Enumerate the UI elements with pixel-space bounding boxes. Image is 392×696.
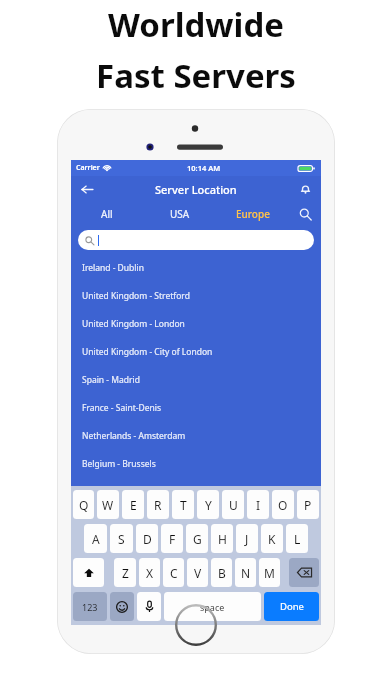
button[interactable]: Europe [216,202,289,226]
staticText: All [101,207,113,221]
staticText: Y [205,497,212,513]
staticText: 123 [82,601,98,613]
button[interactable]: Z [114,558,136,587]
button[interactable]: L [286,524,308,553]
staticText: Carrier [76,163,100,173]
button[interactable] [78,230,314,250]
button[interactable]: United Kingdom - City of London [71,338,321,366]
button[interactable]: K [261,524,283,553]
button[interactable]: Y [197,490,219,519]
button[interactable]: G [186,524,208,553]
button[interactable]: D [136,524,158,553]
staticText: 10:14 AM [187,163,221,173]
button[interactable]: J [236,524,258,553]
staticText: Server Location [155,182,237,197]
staticText: T [180,497,187,513]
staticText: F [169,531,176,547]
staticText: E [130,497,137,513]
button[interactable]: I [247,490,269,519]
staticText: United Kingdom - Stretford [82,290,190,302]
staticText: O [278,497,288,513]
staticText: United Kingdom - London [82,318,185,330]
staticText: USA [170,207,190,221]
button[interactable]: All [71,202,143,226]
button[interactable]: M [259,558,280,587]
staticText: France - Saint-Denis [82,402,162,414]
staticText: A [92,531,100,547]
button[interactable]: U [222,490,244,519]
button[interactable]: 123 [73,592,107,621]
button[interactable]: Done [264,592,319,621]
button[interactable]: United Kingdom - London [71,310,321,338]
staticText: Z [122,565,129,581]
button[interactable]: W [97,490,119,519]
button[interactable]: France - Saint-Denis [71,394,321,422]
staticText: Belgium - Brussels [82,458,156,470]
staticText: S [118,531,125,547]
staticText: Spain - Madrid [82,374,140,386]
staticText: P [304,497,312,513]
button[interactable]: T [172,490,194,519]
button[interactable]: E [122,490,144,519]
button[interactable]: B [211,558,232,587]
button[interactable]: Spain - Madrid [71,366,321,394]
button[interactable]: Notifications [294,178,316,200]
staticText: H [218,531,227,547]
button[interactable]: N [235,558,256,587]
staticText: J [245,531,249,547]
staticText: V [194,565,202,581]
button[interactable]: P [297,490,319,519]
staticText: K [268,531,276,547]
staticText: G [193,531,202,547]
button[interactable]: Q [73,490,94,519]
staticText: United Kingdom - City of London [82,346,213,358]
button[interactable]: United Kingdom - Stretford [71,282,321,310]
button[interactable]: Back [75,177,99,201]
button[interactable]: Voice input [137,592,161,621]
button[interactable]: A [84,524,107,553]
button[interactable]: Backspace [289,558,319,587]
staticText: C [170,565,178,581]
button[interactable]: space [164,592,261,621]
button[interactable]: Netherlands - Amsterdam [71,422,321,450]
staticText: Netherlands - Amsterdam [82,430,186,442]
staticText: I [256,497,261,513]
button[interactable]: Emoji [110,592,134,621]
button[interactable]: Shift [73,558,104,587]
staticText: Q [79,497,89,513]
staticText: Fast Servers [96,53,296,98]
staticText: R [154,497,162,513]
staticText: Worldwide [108,2,284,47]
button[interactable]: H [211,524,233,553]
button[interactable]: Belgium - Brussels [71,450,321,478]
button[interactable]: S [110,524,133,553]
button[interactable]: F [161,524,183,553]
staticText: M [264,565,275,581]
staticText: Ireland - Dublin [82,262,144,274]
staticText: Done [280,600,304,613]
staticText: L [294,531,301,547]
button[interactable]: O [272,490,294,519]
staticText: space [200,601,225,613]
button[interactable]: Ireland - Dublin [71,254,321,282]
staticText: Europe [236,207,270,221]
staticText: N [241,565,251,581]
button[interactable]: USA [143,202,216,226]
staticText: W [102,497,114,513]
staticText: X [146,565,154,581]
staticText: D [143,531,152,547]
button[interactable]: V [187,558,208,587]
button[interactable]: R [147,490,169,519]
button[interactable]: Search [289,202,321,226]
button[interactable]: X [139,558,160,587]
staticText: U [229,497,238,513]
button[interactable]: C [163,558,184,587]
staticText: B [218,565,226,581]
